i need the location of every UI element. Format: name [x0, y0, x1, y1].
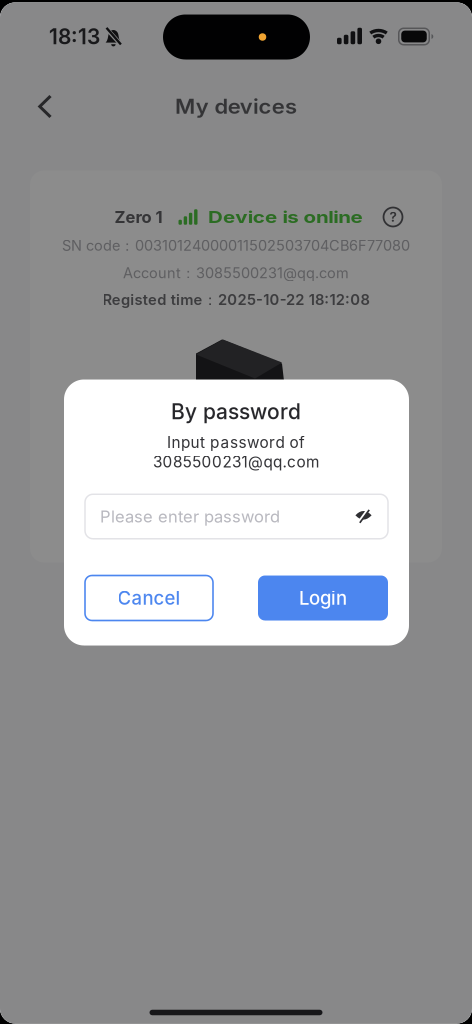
staticText: By password — [171, 399, 301, 424]
staticText: Account：3085500231@qq.com — [123, 264, 349, 283]
button[interactable]: Help — [382, 206, 403, 227]
button[interactable]: Login — [258, 575, 388, 620]
staticText: Zero 1 — [114, 207, 162, 227]
button[interactable]: Show password — [348, 501, 378, 531]
staticText: ? — [389, 209, 396, 225]
staticText: Cancel — [117, 587, 180, 609]
button[interactable]: Password — [85, 494, 388, 539]
staticText: Login — [299, 587, 347, 609]
button[interactable]: Cancel — [85, 575, 213, 620]
staticText: 3085500231@qq.com — [153, 453, 319, 471]
staticText: Device is online — [223, 207, 348, 227]
staticText: SN code：00310124000011502503704CB6F77080 — [62, 237, 410, 255]
button[interactable]: Back — [23, 84, 67, 128]
staticText: Input password of — [167, 433, 305, 452]
staticText: Please enter password — [100, 506, 280, 526]
staticText: 18:13 — [49, 24, 100, 49]
staticText: Registed time：2025-10-22 18:12:08 — [102, 291, 369, 309]
staticText: My devices — [180, 94, 291, 119]
